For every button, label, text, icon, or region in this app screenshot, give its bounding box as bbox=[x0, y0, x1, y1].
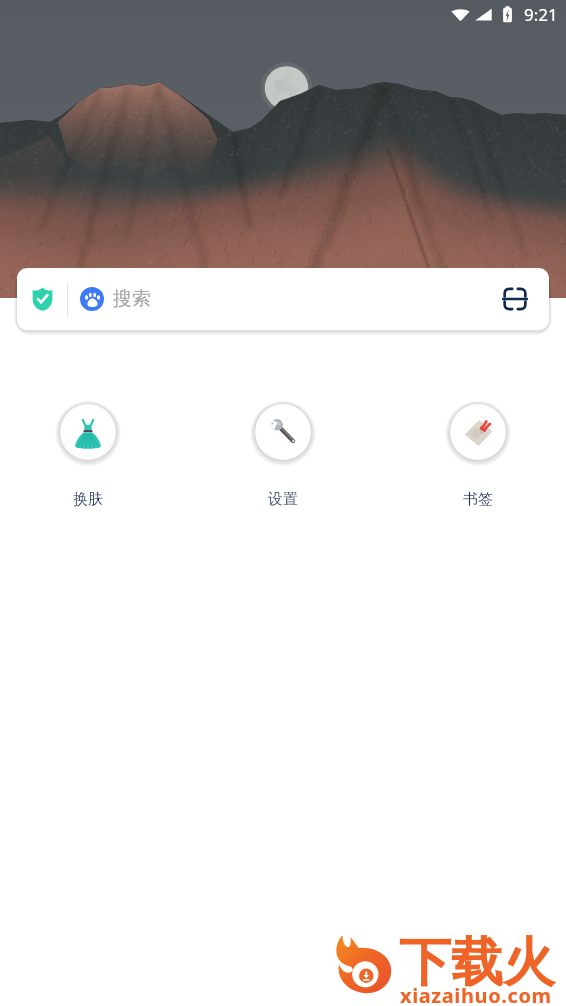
staticText: 书签 bbox=[463, 490, 493, 509]
button[interactable]: 设置 bbox=[250, 399, 316, 509]
staticText: 设置 bbox=[268, 490, 298, 509]
staticText: 换肤 bbox=[73, 490, 103, 509]
staticText: 下载火 bbox=[399, 930, 555, 996]
button[interactable]: 书签 bbox=[445, 399, 511, 509]
staticText: 9:21 bbox=[524, 3, 558, 26]
button[interactable]: 搜索 bbox=[17, 268, 549, 330]
staticText: xiazaihuo.com bbox=[400, 982, 552, 1006]
staticText: 搜索 bbox=[113, 287, 151, 311]
button[interactable]: Scan QR code bbox=[497, 281, 533, 317]
button[interactable]: 换肤 bbox=[55, 399, 121, 509]
